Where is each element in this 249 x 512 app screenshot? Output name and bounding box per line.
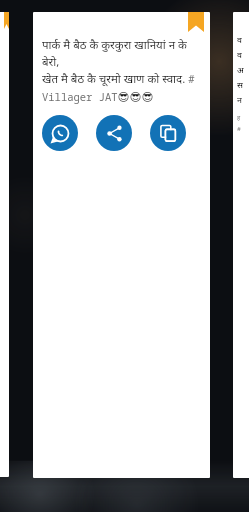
other: Bookmark [188,12,204,32]
staticText: व [237,49,242,61]
staticText: पार्क मै बैठ कै कुरकुरा खानियां न के बेर… [42,37,202,104]
staticText: ह [237,114,241,122]
staticText: न [237,94,242,106]
button[interactable]: Copy [150,115,186,151]
staticText: व [237,34,242,46]
button[interactable]: Bookmark [33,12,210,478]
staticText: # [237,125,241,133]
staticText: अ [237,64,244,76]
button[interactable]: Share [96,115,132,151]
button[interactable]: व [233,12,249,478]
button[interactable] [0,12,9,477]
staticText: स [237,79,243,91]
button[interactable]: Share on WhatsApp [42,115,78,151]
